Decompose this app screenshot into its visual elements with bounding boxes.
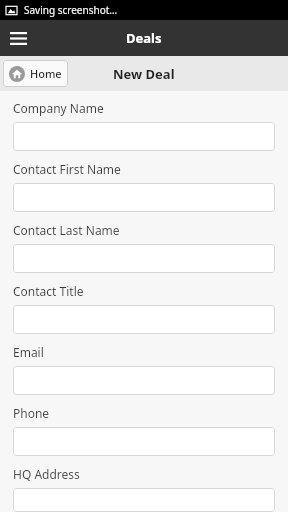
staticText: HQ Address (13, 466, 80, 482)
staticText: Company Name (13, 100, 104, 116)
button[interactable]: Open navigation menu (0, 20, 36, 56)
staticText: Contact Last Name (13, 222, 120, 238)
button[interactable]: Email (13, 366, 275, 395)
staticText: Contact First Name (13, 161, 121, 177)
staticText: Home (30, 66, 62, 81)
button[interactable]: Contact Last Name (13, 244, 275, 273)
button[interactable]: Phone (13, 427, 275, 456)
staticText: Saving screenshot… (24, 3, 118, 17)
button[interactable]: Home (3, 60, 68, 87)
staticText: Deals (126, 29, 162, 47)
staticText: Email (13, 344, 44, 360)
staticText: New Deal (113, 65, 175, 83)
staticText: Phone (13, 405, 50, 421)
staticText: Contact Title (13, 283, 84, 299)
button[interactable]: Company Name (13, 122, 275, 151)
button[interactable]: HQ Address (13, 488, 275, 512)
button[interactable]: Contact Title (13, 305, 275, 334)
button[interactable]: Contact First Name (13, 183, 275, 212)
